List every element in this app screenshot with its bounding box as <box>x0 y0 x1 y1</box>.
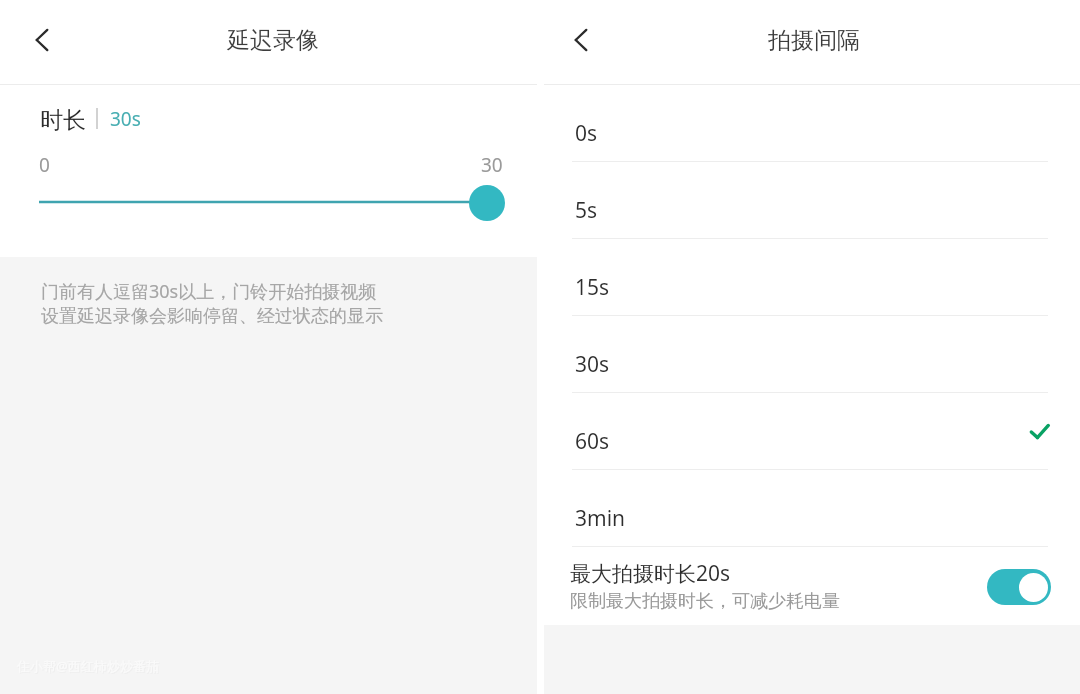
staticText: 最大拍摄时长20s <box>570 559 731 588</box>
staticText: 5s <box>575 196 598 225</box>
button[interactable]: 15s <box>544 239 1080 316</box>
staticText: 60s <box>575 427 610 456</box>
button[interactable]: 0s <box>544 85 1080 162</box>
staticText: 3min <box>575 504 626 533</box>
button[interactable]: Back <box>18 16 66 64</box>
staticText: 设置延迟录像会影响停留、经过状态的显示 <box>41 305 383 328</box>
staticText: 门前有人逗留30s以上，门铃开始拍摄视频 <box>41 279 377 304</box>
button[interactable]: Back <box>557 16 605 64</box>
button[interactable]: 5s <box>544 162 1080 239</box>
staticText: 延迟录像 <box>227 26 319 55</box>
button[interactable]: Duration slider, 30 seconds <box>0 179 537 225</box>
button[interactable]: 3min <box>544 470 1080 547</box>
staticText: 30s <box>110 106 141 132</box>
staticText: 限制最大拍摄时长，可减少耗电量 <box>570 590 840 613</box>
staticText: 拍摄间隔 <box>768 26 860 55</box>
staticText: 30 <box>481 152 503 178</box>
button[interactable]: 60s <box>544 393 1080 470</box>
staticText: 0 <box>39 152 50 178</box>
staticText: 时长 <box>40 106 86 135</box>
staticText: 0s <box>575 119 598 148</box>
button[interactable]: 30s <box>544 316 1080 393</box>
staticText: 15s <box>575 273 610 302</box>
button[interactable]: Limit maximum recording length, on <box>987 569 1051 605</box>
staticText: 30s <box>575 350 610 379</box>
